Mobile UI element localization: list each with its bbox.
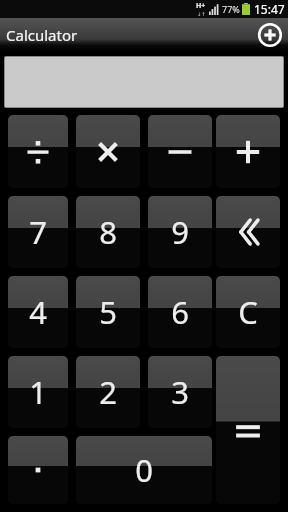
button[interactable]: 4	[8, 276, 68, 348]
button[interactable]: Decimal point	[8, 436, 68, 504]
staticText: 15:47	[254, 1, 285, 17]
button[interactable]: 2	[76, 356, 140, 428]
staticText: 3	[171, 371, 189, 413]
staticText: C	[238, 291, 258, 333]
button[interactable]: 7	[8, 196, 68, 268]
staticText: Calculator	[6, 25, 78, 45]
button[interactable]: 9	[148, 196, 212, 268]
staticText: 77%	[222, 3, 240, 15]
staticText: ↓↑	[197, 11, 206, 17]
staticText: H+	[196, 1, 206, 11]
button[interactable]: 6	[148, 276, 212, 348]
staticText: 5	[99, 291, 117, 333]
button[interactable]: Backspace	[216, 196, 280, 268]
button[interactable]: 1	[8, 356, 68, 428]
button[interactable]: 3	[148, 356, 212, 428]
button[interactable]: Multiply	[76, 115, 140, 188]
button[interactable]: C	[216, 276, 280, 348]
button[interactable]: 0	[76, 436, 212, 504]
staticText: 9	[171, 211, 189, 253]
button[interactable]: 8	[76, 196, 140, 268]
staticText: 2	[99, 371, 117, 413]
staticText: 0	[135, 449, 153, 491]
button[interactable]: Divide	[8, 115, 68, 188]
staticText: 7	[29, 211, 47, 253]
button[interactable]: Equals	[216, 356, 280, 504]
button[interactable]: Minus	[148, 115, 212, 188]
button[interactable]: 5	[76, 276, 140, 348]
staticText: 1	[29, 371, 47, 413]
button[interactable]: Add	[258, 23, 282, 47]
staticText: 8	[99, 211, 117, 253]
staticText: 6	[171, 291, 189, 333]
button[interactable]: Plus	[216, 115, 280, 188]
staticText: 4	[29, 291, 47, 333]
